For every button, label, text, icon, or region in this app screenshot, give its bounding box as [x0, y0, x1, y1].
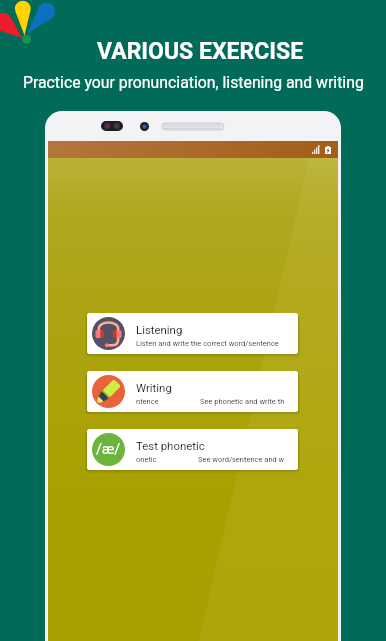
- staticText: Test phonetic: [136, 439, 205, 452]
- staticText: Writing: [136, 381, 172, 394]
- button[interactable]: Listening: [87, 313, 298, 354]
- button[interactable]: Test phonetic: [87, 429, 298, 470]
- other: Writing: [92, 375, 125, 408]
- staticText: Listening: [136, 323, 183, 336]
- other: Test phonetic: [92, 433, 125, 466]
- staticText: Listen and write the correct word/senten…: [136, 339, 279, 348]
- staticText: /æ/: [96, 441, 121, 458]
- staticText: ntence: [136, 397, 159, 406]
- other: Listening: [92, 317, 125, 350]
- staticText: onetic: [136, 455, 157, 464]
- staticText: Practice your pronunciation, listening a…: [23, 73, 364, 92]
- staticText: See phonetic and write th: [200, 397, 285, 406]
- button[interactable]: Writing: [87, 371, 298, 412]
- staticText: VARIOUS EXERCISE: [97, 38, 304, 65]
- staticText: See word/sentence and w: [198, 455, 285, 464]
